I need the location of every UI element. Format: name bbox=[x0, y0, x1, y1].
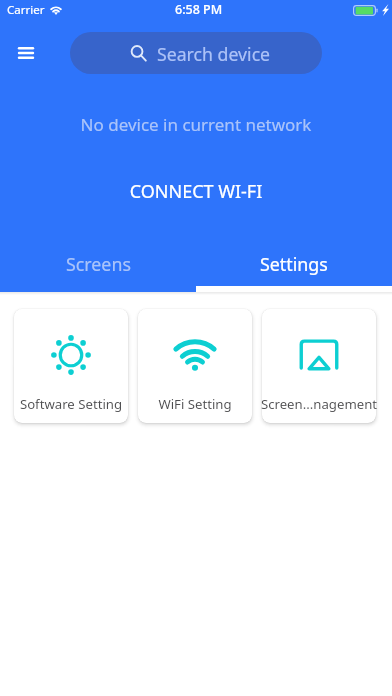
staticText: Search device bbox=[157, 42, 271, 66]
button[interactable]: Search device bbox=[70, 32, 322, 74]
button[interactable] bbox=[138, 309, 252, 423]
button[interactable]: Settings bbox=[196, 242, 392, 292]
button[interactable]: Menu bbox=[8, 32, 44, 74]
button[interactable] bbox=[14, 309, 128, 423]
button[interactable] bbox=[262, 309, 376, 423]
staticText: Settings bbox=[260, 252, 328, 276]
staticText: Software Setting bbox=[9, 395, 133, 413]
staticText: No device in current network bbox=[0, 113, 392, 136]
staticText: 6:58 PM bbox=[175, 1, 223, 18]
staticText: Carrier bbox=[7, 2, 45, 18]
staticText: Screens bbox=[66, 252, 131, 276]
staticText: WiFi Setting bbox=[133, 395, 257, 413]
staticText: CONNECT WI-FI bbox=[0, 179, 392, 204]
button[interactable]: Screens bbox=[0, 242, 196, 292]
staticText: Screen...nagement bbox=[257, 395, 381, 413]
